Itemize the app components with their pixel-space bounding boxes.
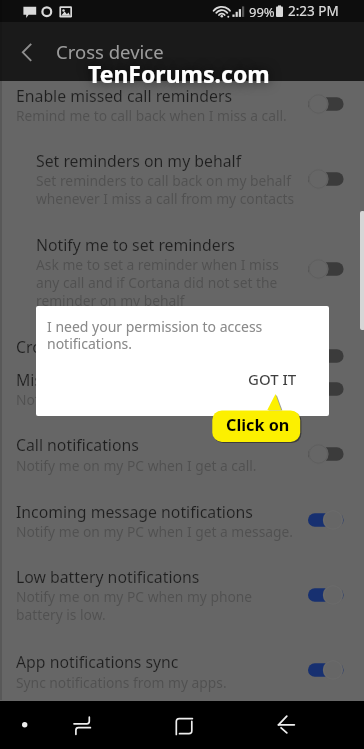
staticText: Low battery notifications bbox=[16, 566, 200, 588]
staticText: Enable missed call reminders bbox=[16, 85, 233, 107]
staticText: Cross device bbox=[56, 39, 164, 64]
staticText: battery is low. bbox=[16, 605, 106, 624]
staticText: Sync notifications from my apps. bbox=[16, 673, 227, 692]
staticText: any call and if Cortana did not set the bbox=[36, 273, 278, 292]
button[interactable]: GOT IT bbox=[231, 362, 313, 396]
button[interactable]: Missed call notifications off bbox=[304, 373, 348, 405]
staticText: I need your permission to access notific… bbox=[47, 317, 263, 353]
staticText: Ask me to set a reminder when I miss bbox=[36, 255, 279, 274]
button[interactable]: Notify me to set reminders off bbox=[304, 253, 348, 285]
button[interactable]: Call notifications off bbox=[304, 438, 348, 470]
staticText: Notify me on my PC when my phone bbox=[16, 587, 253, 606]
button[interactable]: App notifications sync on bbox=[304, 654, 348, 686]
staticText: App notifications sync bbox=[16, 651, 179, 673]
staticText: Remind me to call back when I miss a cal… bbox=[16, 106, 287, 125]
staticText: Notify me on my PC when I get a message. bbox=[16, 522, 293, 541]
staticText: Notify me on my PC when I miss a call. bbox=[16, 390, 265, 409]
staticText: Incoming message notifications bbox=[16, 501, 253, 523]
staticText: GOT IT bbox=[248, 369, 297, 389]
button[interactable]: Menu bbox=[9, 709, 41, 741]
staticText: Missed call notifications bbox=[16, 369, 193, 391]
button[interactable]: Cross device notifications off bbox=[304, 340, 348, 372]
button[interactable]: Recent apps bbox=[66, 709, 98, 741]
button[interactable]: Back bbox=[270, 709, 302, 741]
staticText: reminder on my behalf bbox=[36, 291, 185, 310]
staticText: Cross device notifications bbox=[16, 336, 204, 358]
staticText: TenForums.com bbox=[88, 58, 270, 89]
button[interactable]: Home bbox=[168, 709, 200, 741]
button[interactable]: Enable missed call reminders off bbox=[304, 88, 348, 120]
button[interactable]: Click on bbox=[205, 394, 310, 448]
button[interactable]: Low battery notifications on bbox=[304, 579, 348, 611]
staticText: Set reminders to call back on my behalf bbox=[36, 171, 291, 190]
staticText: Set reminders on my behalf bbox=[36, 150, 242, 172]
staticText: Call notifications bbox=[16, 434, 139, 456]
staticText: 99% bbox=[249, 3, 275, 21]
button[interactable]: Incoming message notifications on bbox=[304, 504, 348, 536]
staticText: whenever I miss a call from my contacts bbox=[36, 189, 295, 208]
staticText: Notify me on my PC when I get a call. bbox=[16, 456, 257, 475]
staticText: 2:23 PM bbox=[288, 2, 339, 20]
button[interactable]: Set reminders on my behalf off bbox=[304, 163, 348, 195]
staticText: Notify me to set reminders bbox=[36, 234, 235, 256]
button[interactable]: Navigate up bbox=[7, 34, 43, 70]
staticText: Click on bbox=[226, 414, 290, 436]
